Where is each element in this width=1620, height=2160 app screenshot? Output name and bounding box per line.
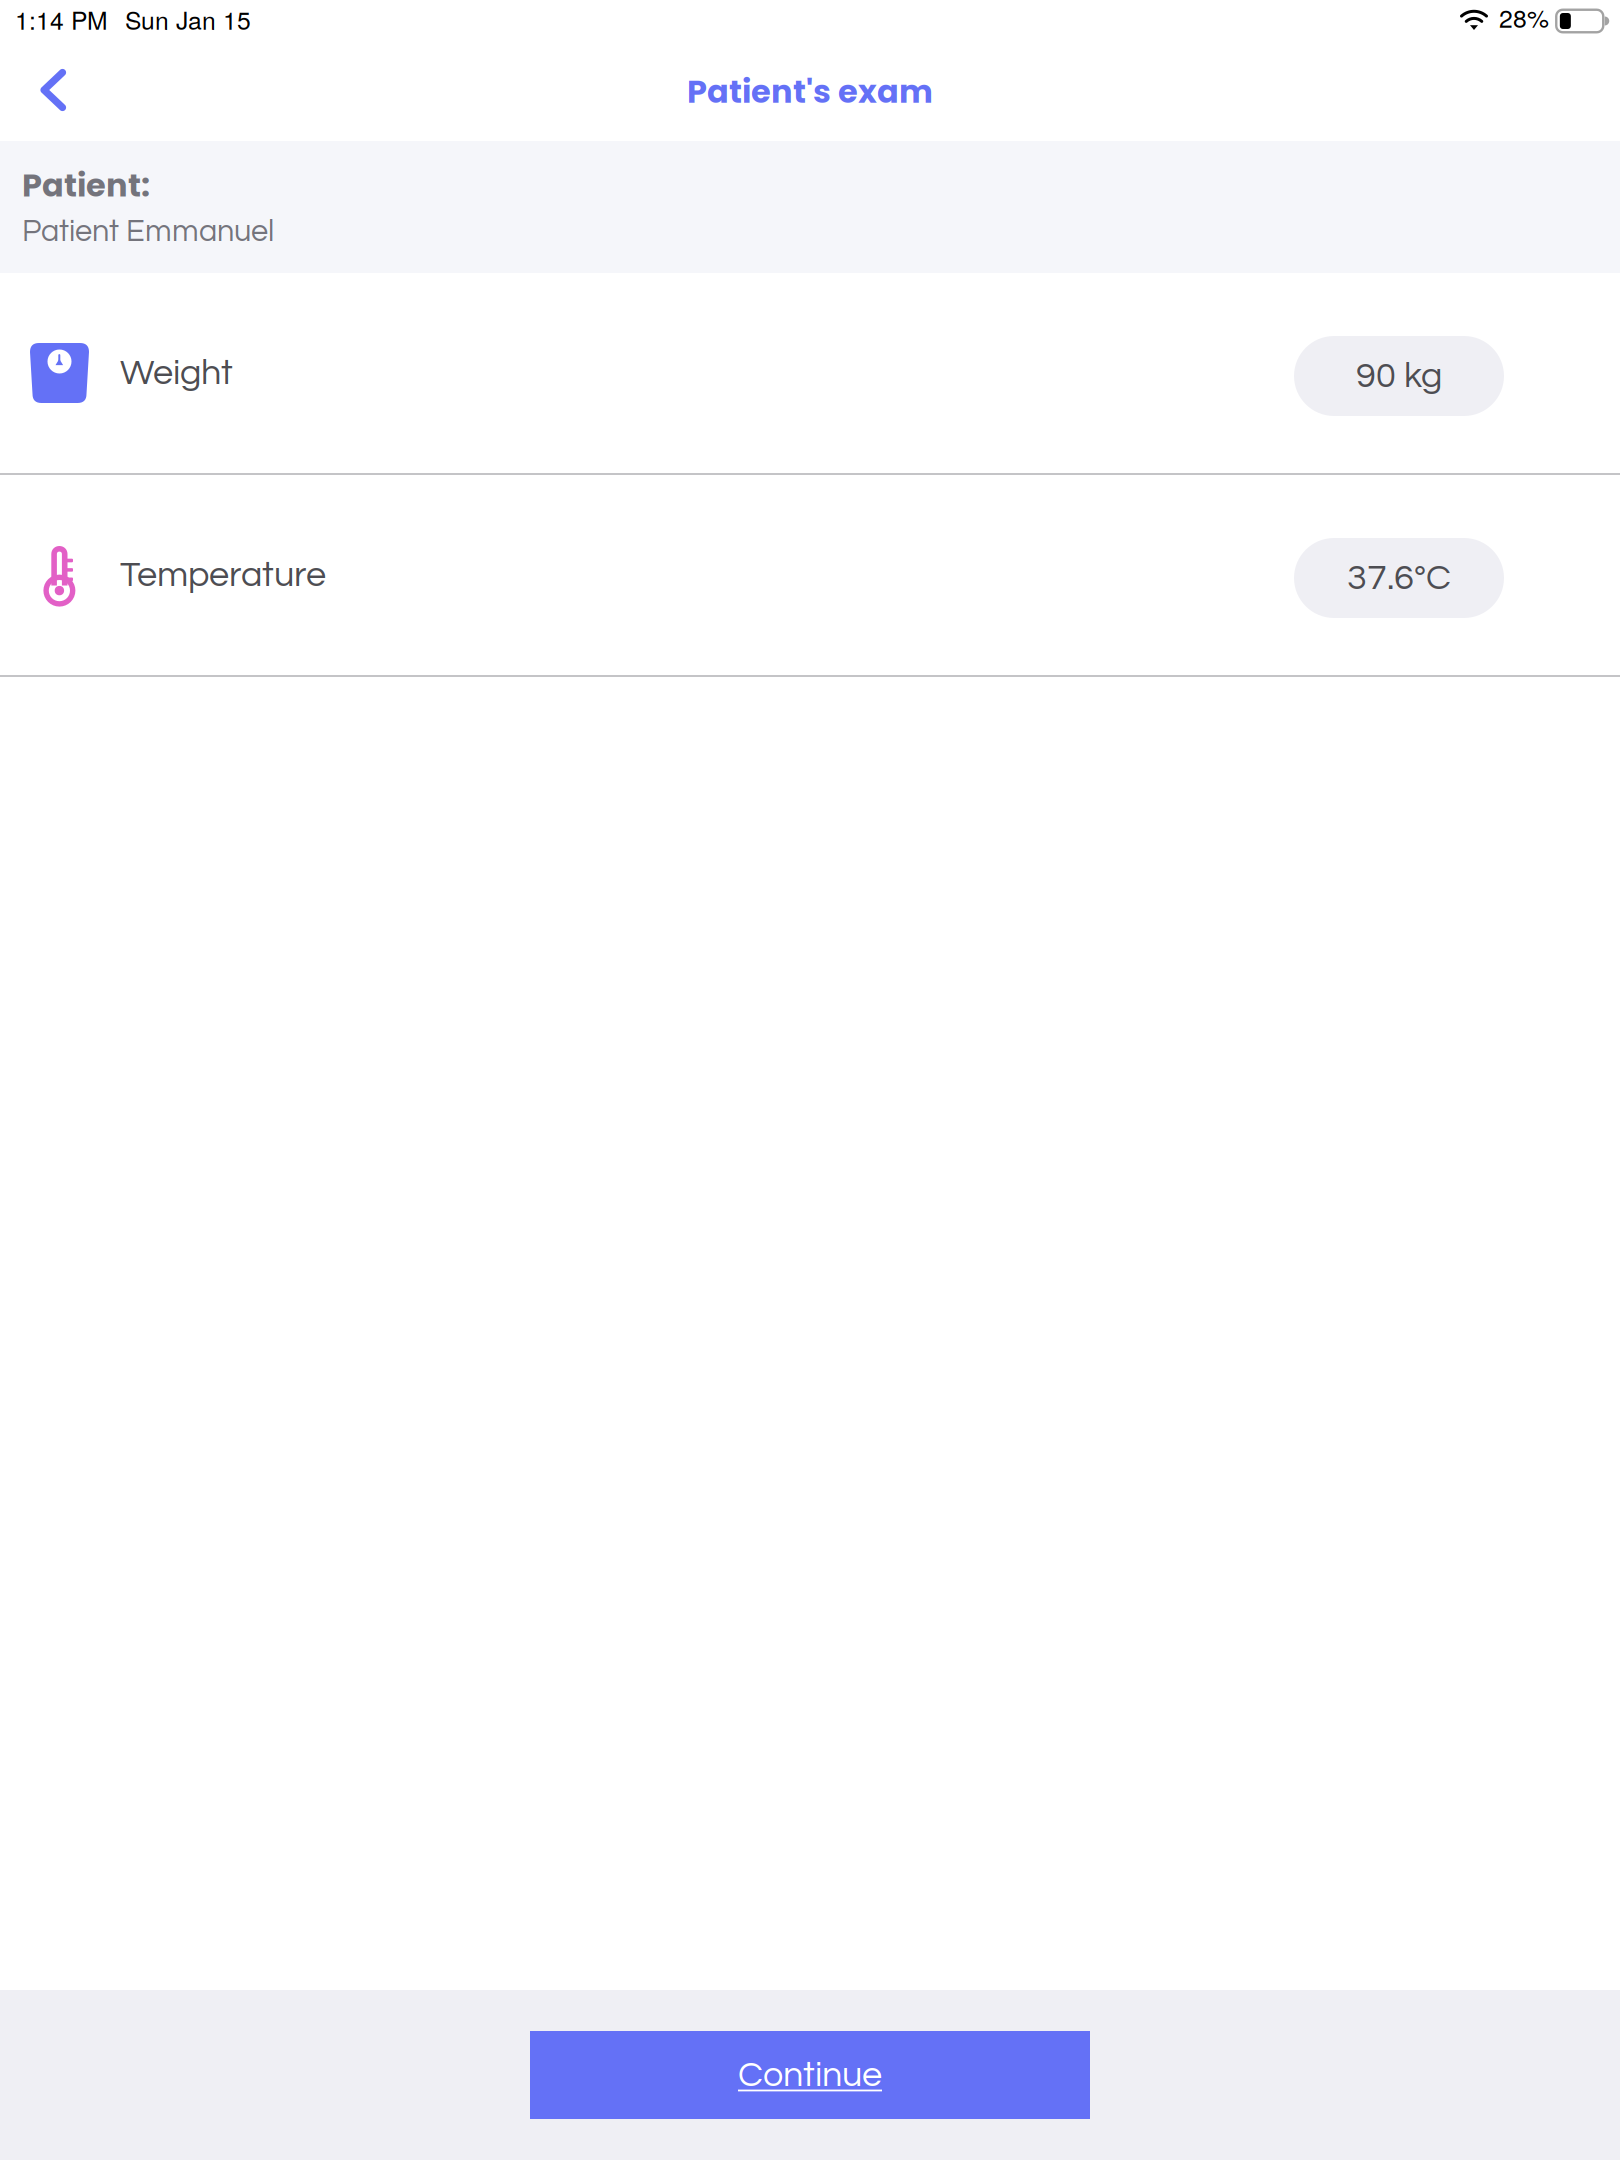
- staticText: Weight: [120, 354, 233, 392]
- staticText: Continue: [738, 2056, 882, 2094]
- staticText: 28%: [1499, 0, 1549, 35]
- button[interactable]: Continue: [530, 2031, 1090, 2119]
- staticText: Patient's exam: [687, 69, 933, 114]
- button[interactable]: Weight: [0, 273, 1620, 473]
- button[interactable]: Back: [0, 48, 105, 141]
- staticText: Temperature: [120, 556, 326, 594]
- staticText: Patient Emmanuel: [22, 216, 274, 247]
- staticText: Patient:: [22, 163, 150, 208]
- staticText: 1:14 PM: [15, 1, 108, 37]
- staticText: 37.6°C: [1347, 559, 1451, 597]
- staticText: Sun Jan 15: [125, 1, 251, 37]
- staticText: 90 kg: [1356, 357, 1442, 395]
- button[interactable]: Temperature: [0, 475, 1620, 675]
